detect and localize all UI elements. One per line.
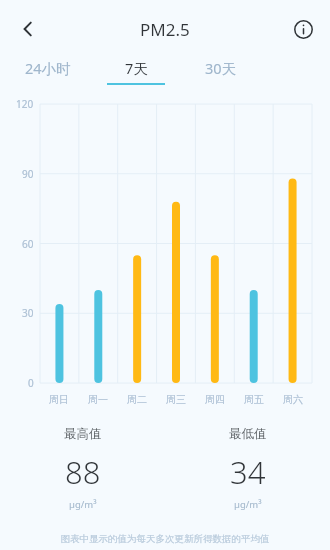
staticText: 最高值: [64, 426, 102, 442]
staticText: 周五: [244, 393, 264, 406]
staticText: 7天: [125, 58, 148, 78]
staticText: 图表中显示的值为每天多次更新所得数据的平均值: [0, 533, 330, 545]
button[interactable]: 24小时: [0, 58, 96, 90]
button[interactable]: 30天: [176, 58, 266, 90]
button[interactable]: Info: [283, 9, 323, 49]
staticText: 24小时: [25, 58, 71, 78]
staticText: 120: [16, 97, 34, 111]
staticText: 周六: [283, 393, 303, 406]
staticText: 30天: [205, 58, 237, 78]
staticText: 周三: [166, 393, 186, 406]
staticText: 88: [65, 451, 101, 493]
staticText: 34: [230, 451, 266, 493]
button[interactable]: 7天: [96, 58, 176, 90]
button[interactable]: 最低值: [165, 426, 330, 511]
staticText: 30: [22, 306, 34, 320]
staticText: 90: [22, 167, 34, 181]
staticText: 周四: [205, 393, 225, 406]
staticText: 周二: [127, 393, 147, 406]
staticText: µg/m³: [69, 498, 97, 511]
staticText: 60: [22, 237, 34, 251]
staticText: 最低值: [229, 426, 267, 442]
staticText: 周日: [49, 393, 69, 406]
button[interactable]: 最高值: [0, 426, 165, 511]
staticText: PM2.5: [140, 18, 190, 41]
staticText: 0: [28, 376, 34, 390]
staticText: µg/m³: [234, 498, 262, 511]
staticText: 周一: [88, 393, 108, 406]
button[interactable]: Back: [6, 7, 50, 51]
